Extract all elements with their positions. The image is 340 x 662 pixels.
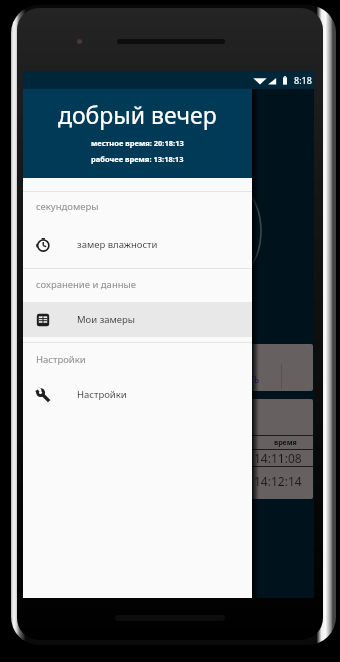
- staticText: Настройки: [77, 388, 127, 401]
- staticText: 14:12:14: [254, 473, 302, 489]
- staticText: сохранение и данные: [36, 278, 136, 291]
- staticText: местное время: 20:18:13: [91, 138, 184, 148]
- staticText: 8:18: [294, 74, 312, 86]
- staticText: время: [274, 438, 297, 448]
- staticText: секундомеры: [36, 200, 99, 213]
- staticText: рабочее время: 13:18:13: [91, 154, 184, 164]
- button[interactable]: замер влажности: [23, 227, 252, 262]
- other: Signal: [267, 76, 277, 85]
- staticText: Мои замеры: [77, 313, 136, 326]
- staticText: 14:11:08: [254, 450, 302, 466]
- staticText: замер влажности: [77, 238, 158, 251]
- button[interactable]: Мои замеры: [23, 302, 252, 337]
- staticText: СОХРАНИТЬ: [212, 374, 260, 385]
- button[interactable]: СОХРАНИТЬ: [212, 371, 260, 387]
- other: Battery: [283, 76, 287, 85]
- staticText: добрый вечер: [58, 99, 217, 130]
- button[interactable]: Настройки: [23, 377, 252, 412]
- staticText: Настройки: [36, 353, 86, 366]
- other: Wi-Fi: [253, 76, 267, 85]
